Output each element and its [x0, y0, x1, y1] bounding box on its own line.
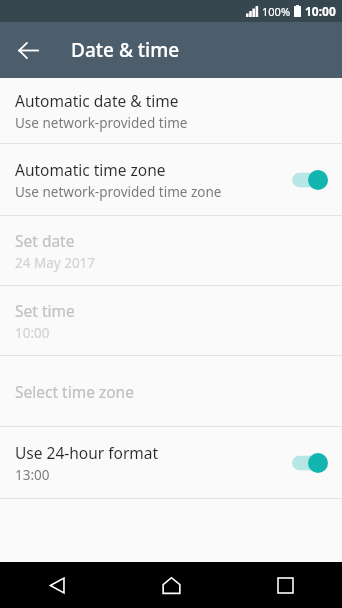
button[interactable]: Back: [8, 30, 48, 70]
staticText: 13:00: [15, 466, 50, 484]
button[interactable]: Select time zone: [0, 356, 342, 426]
button[interactable]: Set time: [0, 286, 342, 355]
staticText: Select time zone: [15, 381, 134, 402]
staticText: 10:00: [305, 3, 336, 19]
button[interactable]: Automatic time zone: [0, 144, 342, 215]
button[interactable]: Home: [114, 562, 228, 608]
button[interactable]: Use 24-hour format: [0, 427, 342, 498]
staticText: 100%: [262, 4, 291, 19]
button[interactable]: Automatic date & time: [0, 78, 342, 143]
button[interactable]: Set date: [0, 216, 342, 285]
staticText: Automatic time zone: [15, 159, 166, 180]
button[interactable]: Toggle Automatic time zone: [290, 166, 330, 194]
button[interactable]: Recent apps: [228, 562, 342, 608]
staticText: Automatic date & time: [15, 90, 179, 111]
staticText: Use network-provided time zone: [15, 183, 222, 201]
staticText: Use 24-hour format: [15, 442, 159, 463]
button[interactable]: Toggle Use 24-hour format: [290, 449, 330, 477]
staticText: 24 May 2017: [15, 254, 96, 272]
button[interactable]: Back: [0, 562, 114, 608]
staticText: Date & time: [71, 37, 180, 63]
staticText: Use network-provided time: [15, 114, 188, 132]
staticText: Set time: [15, 300, 75, 321]
staticText: 10:00: [15, 324, 50, 342]
staticText: Set date: [15, 230, 75, 251]
